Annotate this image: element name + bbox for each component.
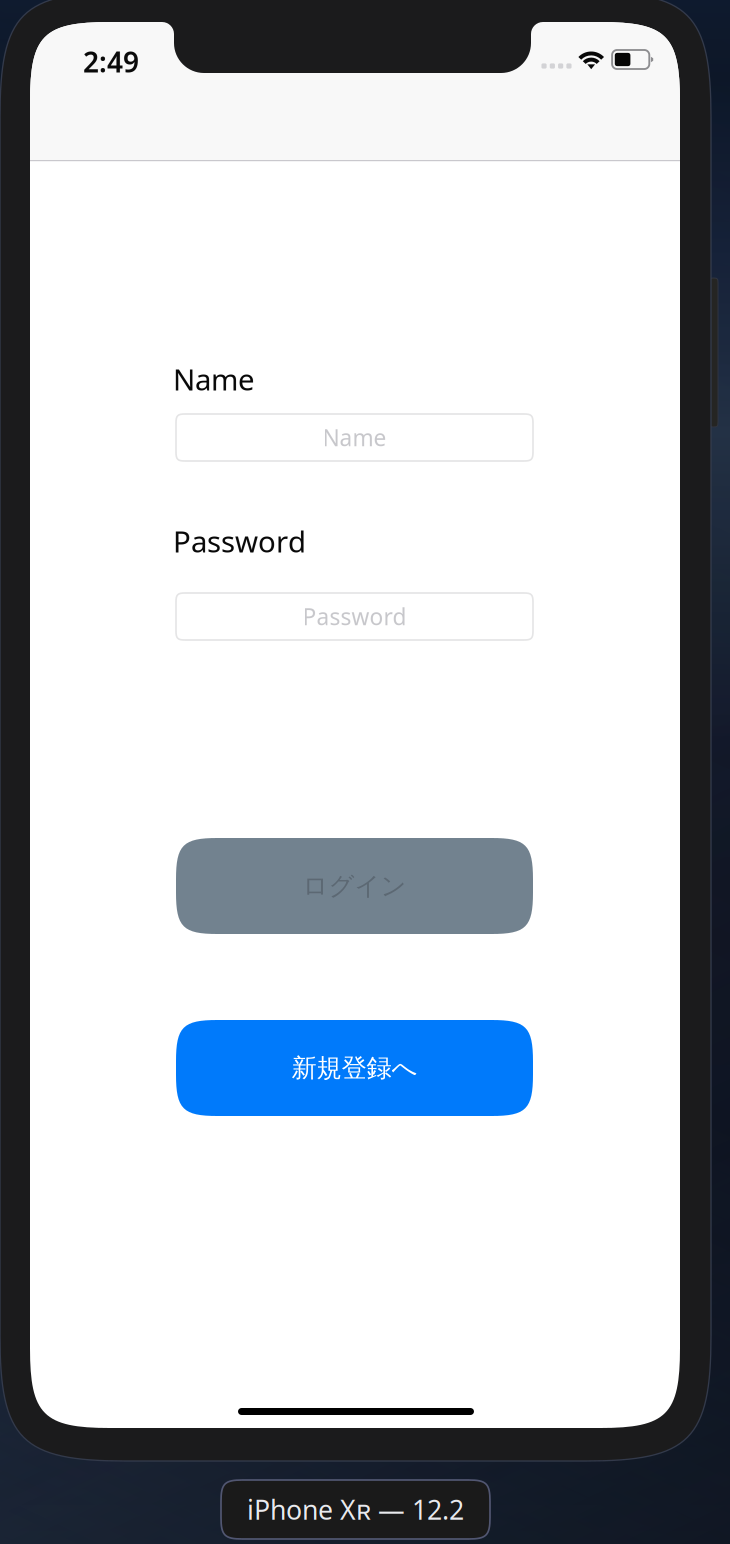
button[interactable]: ログイン: [176, 838, 533, 934]
button[interactable]: 新規登録へ: [176, 1020, 533, 1116]
staticText: 新規登録へ: [291, 1052, 417, 1083]
button[interactable]: Password: [176, 593, 533, 640]
staticText: Name: [322, 422, 386, 452]
staticText: iPhone Xʀ — 12.2: [247, 1492, 464, 1527]
button[interactable]: Name: [176, 414, 533, 461]
staticText: ログイン: [302, 870, 406, 901]
staticText: Password: [302, 601, 406, 631]
button[interactable]: iPhone Xʀ — 12.2: [221, 1480, 490, 1539]
staticText: 2:49: [83, 43, 139, 80]
staticText: Password: [173, 521, 306, 560]
staticText: Name: [173, 359, 255, 398]
